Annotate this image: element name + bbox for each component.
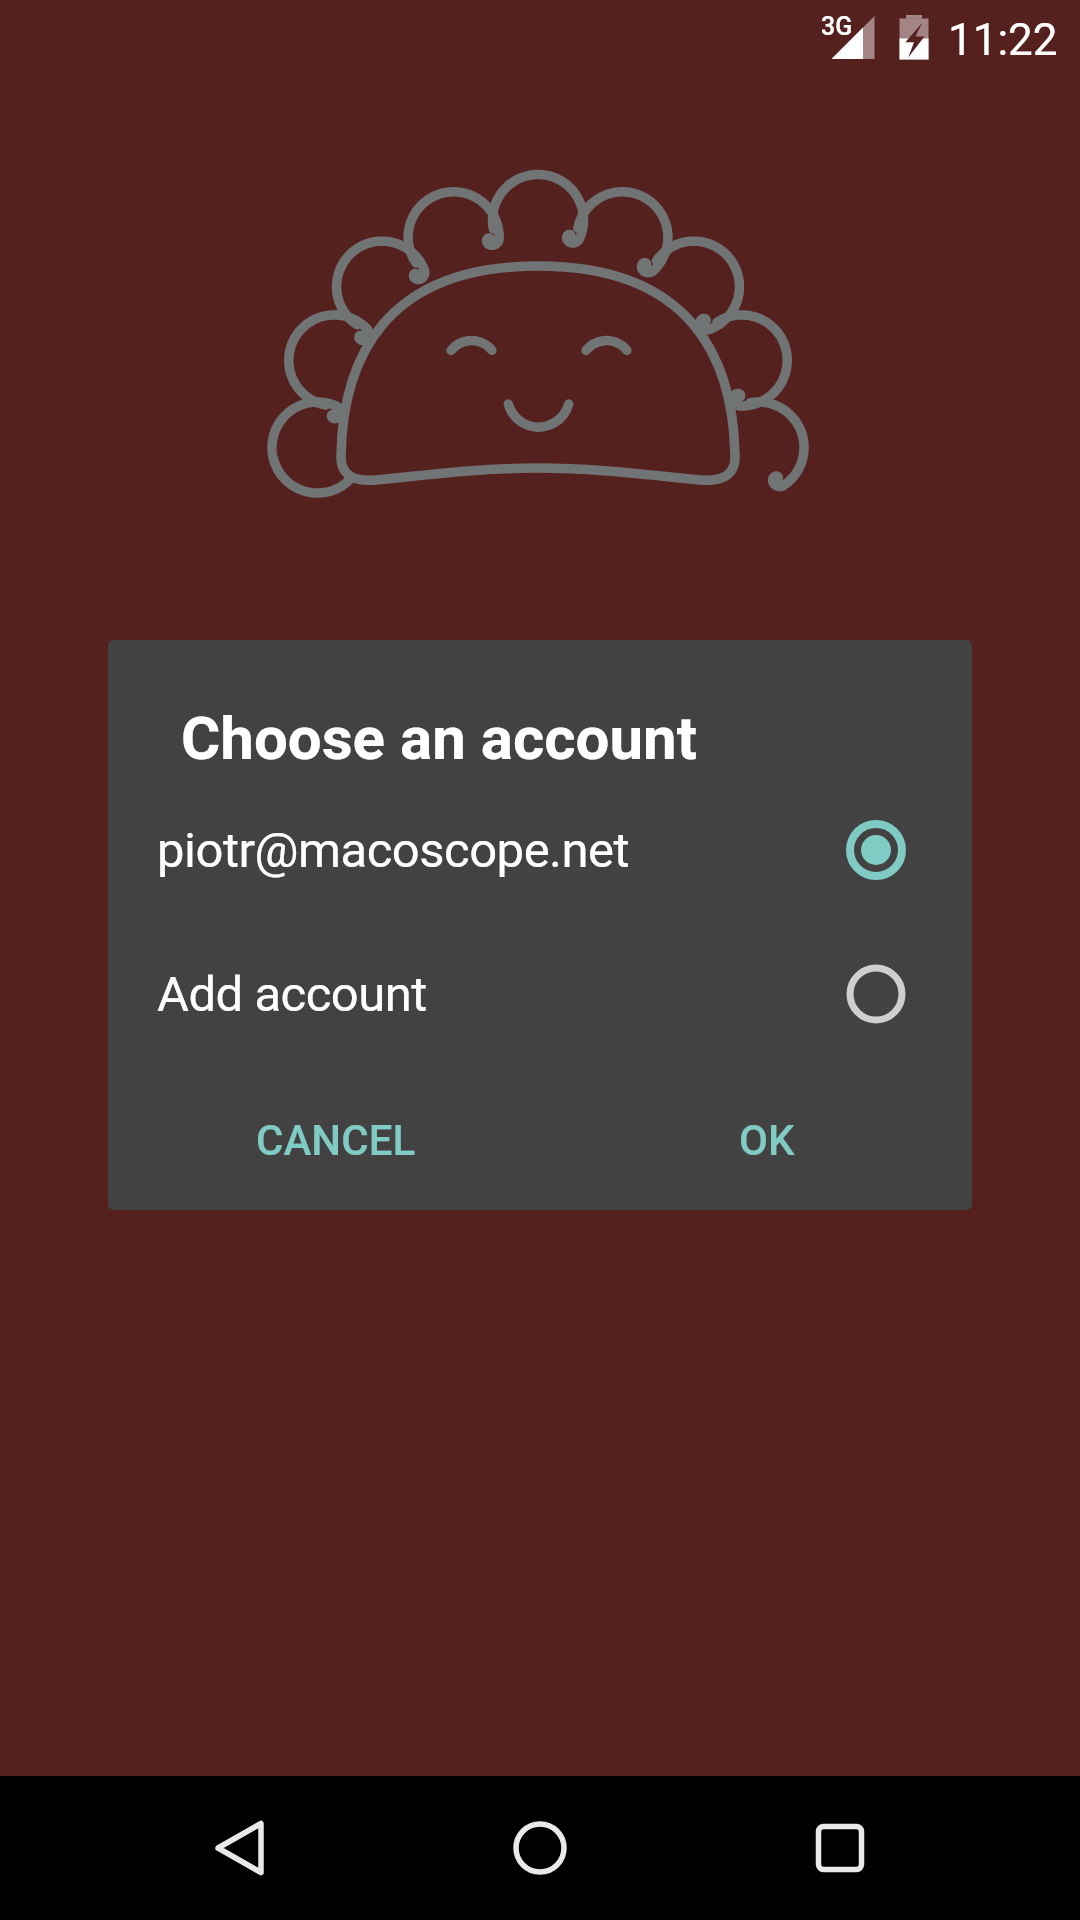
staticText: CANCEL: [256, 1116, 416, 1165]
button[interactable]: Home: [480, 1788, 600, 1908]
staticText: 11:22: [948, 14, 1058, 66]
button[interactable]: piotr@macoscope.net: [108, 778, 972, 922]
staticText: Add account: [157, 966, 427, 1023]
staticText: Choose an account: [181, 703, 697, 773]
staticText: piotr@macoscope.net: [157, 822, 630, 879]
staticText: OK: [739, 1116, 795, 1165]
button[interactable]: Add account: [108, 922, 972, 1066]
staticText: 3G: [821, 12, 853, 41]
button[interactable]: Recent apps: [780, 1788, 900, 1908]
button[interactable]: OK: [723, 1102, 811, 1179]
button[interactable]: Back: [180, 1788, 300, 1908]
button[interactable]: CANCEL: [240, 1102, 432, 1179]
